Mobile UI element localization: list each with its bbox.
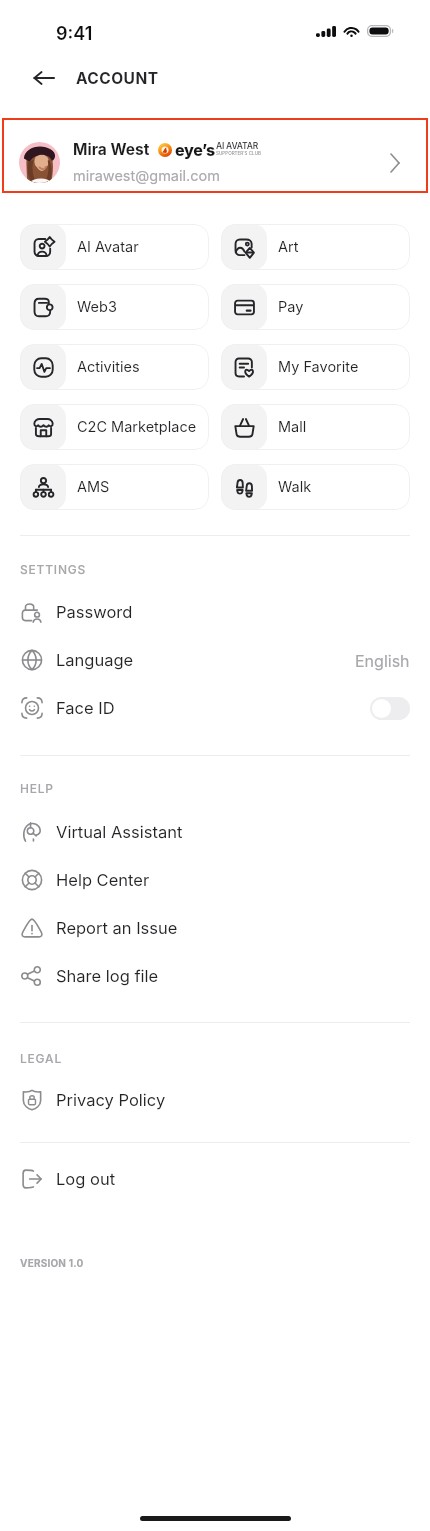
button[interactable]: Privacy Policy xyxy=(0,1076,430,1124)
button[interactable]: Back xyxy=(30,64,58,92)
staticText: Face ID xyxy=(56,698,115,718)
staticText: LEGAL xyxy=(20,1051,62,1066)
staticText: Share log file xyxy=(56,966,159,986)
staticText: Log out xyxy=(56,1169,116,1189)
staticText: Mira West xyxy=(73,140,150,159)
button[interactable]: Share log file xyxy=(0,952,430,1000)
staticText: SETTINGS xyxy=(20,562,87,577)
button[interactable]: Face ID toggle xyxy=(370,697,410,720)
staticText: 9:41 xyxy=(56,23,93,45)
button[interactable]: Log out xyxy=(0,1155,430,1203)
staticText: Report an Issue xyxy=(56,918,178,938)
button[interactable]: Art xyxy=(221,224,410,270)
button[interactable]: Language xyxy=(0,636,430,684)
staticText: Activities xyxy=(77,358,140,376)
staticText: Walk xyxy=(278,478,312,496)
staticText: AMS xyxy=(77,478,110,496)
staticText: Virtual Assistant xyxy=(56,822,183,842)
staticText: Art xyxy=(278,238,299,256)
staticText: AI Avatar xyxy=(77,238,139,256)
staticText: AI AVATAR xyxy=(216,141,259,151)
button[interactable]: AMS xyxy=(20,464,209,510)
staticText: C2C Marketplace xyxy=(77,418,197,436)
staticText: English xyxy=(355,651,410,670)
staticText: eye’s xyxy=(175,140,215,159)
button[interactable]: Mall xyxy=(221,404,410,450)
staticText: Web3 xyxy=(77,298,117,316)
button[interactable]: AI Avatar xyxy=(20,224,209,270)
button[interactable]: Face ID xyxy=(0,684,430,732)
staticText: My Favorite xyxy=(278,358,359,376)
staticText: Language xyxy=(56,650,134,670)
button[interactable]: Help Center xyxy=(0,856,430,904)
staticText: Help Center xyxy=(56,870,150,890)
button[interactable]: My Favorite xyxy=(221,344,410,390)
staticText: Password xyxy=(56,602,133,622)
button[interactable]: Pay xyxy=(221,284,410,330)
staticText: SUPPORTER'S CLUB xyxy=(216,151,262,157)
staticText: Mall xyxy=(278,418,307,436)
button[interactable]: Activities xyxy=(20,344,209,390)
button[interactable]: Web3 xyxy=(20,284,209,330)
staticText: ACCOUNT xyxy=(76,69,159,88)
staticText: VERSION 1.0 xyxy=(20,1257,84,1269)
staticText: Privacy Policy xyxy=(56,1090,166,1110)
staticText: HELP xyxy=(20,781,54,796)
button[interactable]: Mira West xyxy=(2,118,428,193)
button[interactable]: C2C Marketplace xyxy=(20,404,209,450)
button[interactable]: Password xyxy=(0,588,430,636)
button[interactable]: Report an Issue xyxy=(0,904,430,952)
staticText: mirawest@gmail.com xyxy=(73,167,220,185)
staticText: Pay xyxy=(278,298,304,316)
button[interactable]: Walk xyxy=(221,464,410,510)
button[interactable]: Virtual Assistant xyxy=(0,808,430,856)
